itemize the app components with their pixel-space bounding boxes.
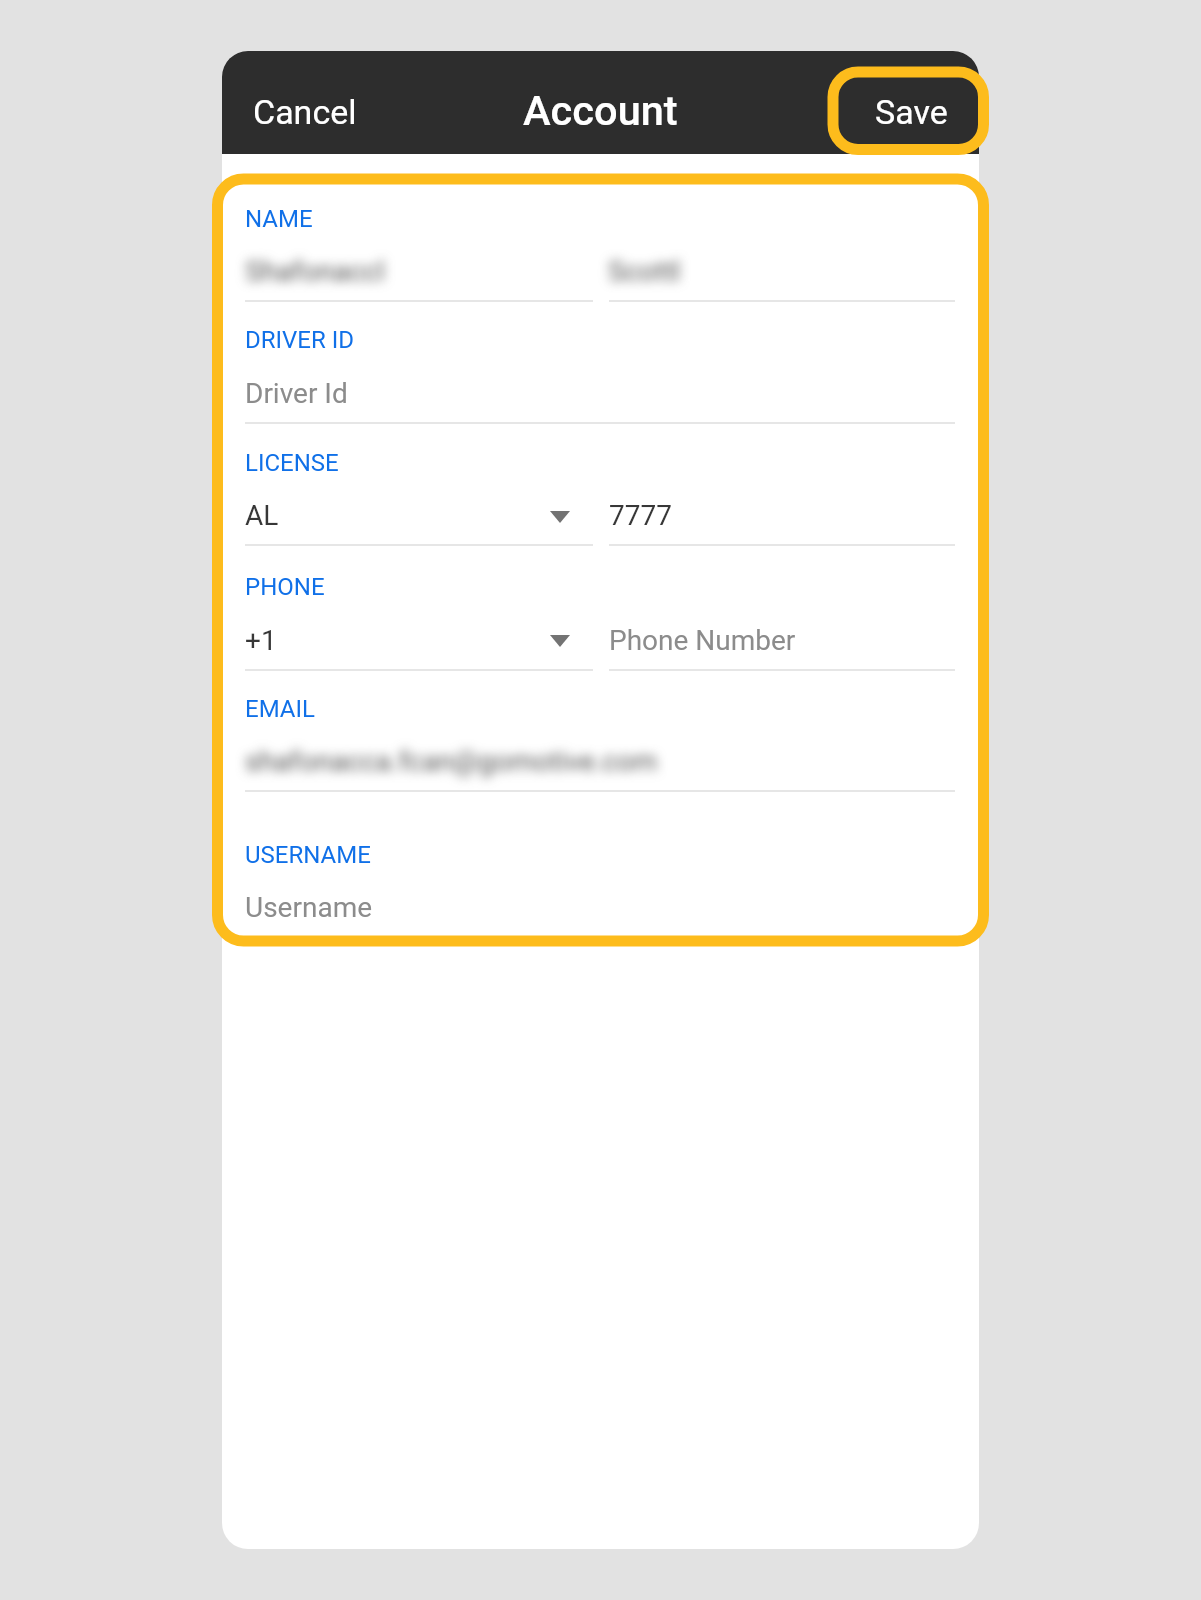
staticText: USERNAME <box>245 841 371 869</box>
staticText: NAME <box>245 205 313 233</box>
staticText: Scottl <box>608 255 681 288</box>
staticText: Cancel <box>253 92 357 132</box>
button[interactable] <box>609 496 955 546</box>
button[interactable] <box>245 252 593 302</box>
button[interactable] <box>609 621 955 671</box>
staticText: DRIVER ID <box>245 326 355 354</box>
button[interactable] <box>245 374 955 424</box>
button[interactable]: Cancel <box>235 78 375 146</box>
staticText: AL <box>245 499 279 532</box>
staticText: Shafonaccl <box>245 255 385 288</box>
staticText: PHONE <box>245 573 325 601</box>
button[interactable]: Select state <box>538 499 582 543</box>
button[interactable] <box>245 621 593 671</box>
staticText: +1 <box>245 624 277 657</box>
staticText: EMAIL <box>245 695 315 723</box>
staticText: Account <box>523 86 678 135</box>
staticText: Save <box>875 92 948 132</box>
button[interactable] <box>245 496 593 546</box>
button[interactable] <box>245 742 955 792</box>
button[interactable]: Save <box>857 78 966 146</box>
staticText: 7777 <box>609 499 672 532</box>
staticText: Username <box>245 891 373 924</box>
staticText: Phone Number <box>609 624 796 657</box>
staticText: Driver Id <box>245 377 348 410</box>
button[interactable] <box>609 252 955 302</box>
button[interactable] <box>245 890 955 936</box>
button[interactable]: Select country code <box>538 623 582 667</box>
staticText: shafonacca.fcan@gomotive.com <box>245 745 658 778</box>
staticText: LICENSE <box>245 449 339 477</box>
